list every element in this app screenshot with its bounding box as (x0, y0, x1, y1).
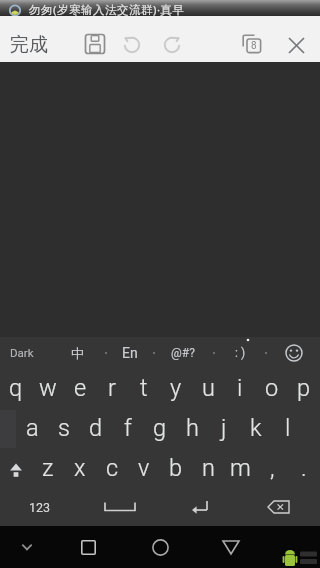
staticText: w (39, 374, 57, 402)
staticText: d (89, 414, 103, 442)
button[interactable] (161, 33, 183, 55)
staticText: @#? (171, 346, 195, 360)
staticText: c (106, 454, 119, 482)
staticText: i (237, 374, 243, 402)
button[interactable]: v (128, 448, 160, 488)
button[interactable]: c (96, 448, 128, 488)
button[interactable] (211, 528, 251, 566)
button[interactable] (170, 488, 230, 526)
staticText: r (108, 374, 116, 402)
staticText: . (301, 454, 307, 482)
button[interactable]: 8 (240, 32, 264, 56)
button[interactable]: e (64, 368, 96, 408)
button[interactable] (140, 528, 180, 566)
button[interactable]: @#? (161, 337, 205, 368)
staticText: g (153, 414, 167, 442)
button[interactable]: 123 (10, 488, 70, 526)
button[interactable] (80, 488, 160, 526)
staticText: f (124, 414, 132, 442)
button[interactable]: d (80, 408, 112, 448)
staticText: q (9, 374, 23, 402)
button[interactable] (68, 528, 108, 566)
staticText: p (297, 374, 311, 402)
staticText: n (202, 454, 215, 482)
button[interactable]: l (272, 408, 304, 448)
staticText: e (74, 374, 87, 402)
staticText: x (74, 454, 86, 482)
button[interactable]: g (144, 408, 176, 448)
button[interactable]: w (32, 368, 64, 408)
button[interactable]: z (32, 448, 64, 488)
staticText: m (230, 454, 251, 482)
staticText: s (58, 414, 70, 442)
staticText: j (221, 414, 227, 442)
staticText: t (140, 374, 148, 402)
button[interactable]: y (160, 368, 192, 408)
button[interactable]: s (48, 408, 80, 448)
button[interactable]: . (288, 448, 320, 488)
button[interactable]: , (256, 448, 288, 488)
button[interactable]: t (128, 368, 160, 408)
button[interactable] (285, 35, 308, 58)
button[interactable]: b (160, 448, 192, 488)
button[interactable] (121, 33, 143, 55)
staticText: h (186, 414, 199, 442)
button[interactable]: a (16, 408, 48, 448)
button[interactable] (84, 33, 106, 55)
button[interactable]: k (240, 408, 272, 448)
staticText: 勿匆(岁寒输入法交流群)·真早 (29, 2, 185, 18)
button[interactable]: j (208, 408, 240, 448)
button[interactable]: r (96, 368, 128, 408)
button[interactable]: o (256, 368, 288, 408)
staticText: 中 (71, 345, 84, 361)
button[interactable]: En (108, 337, 152, 368)
staticText: y (170, 374, 182, 402)
button[interactable]: f (112, 408, 144, 448)
button[interactable]: u (192, 368, 224, 408)
button[interactable] (250, 488, 306, 526)
button[interactable]: p (288, 368, 320, 408)
staticText: , (270, 454, 275, 482)
staticText: b (169, 454, 183, 482)
staticText: o (265, 374, 279, 402)
button[interactable]: m (224, 448, 256, 488)
button[interactable]: 中 (55, 337, 99, 368)
button[interactable]: 完成 (0, 30, 58, 60)
button[interactable]: q (0, 368, 32, 408)
button[interactable]: x (64, 448, 96, 488)
button[interactable]: h (176, 408, 208, 448)
button[interactable]: Dark (0, 337, 44, 368)
staticText: a (26, 414, 39, 442)
staticText: v (138, 454, 150, 482)
staticText: 123 (29, 500, 51, 515)
staticText: : ) (235, 346, 246, 360)
button[interactable] (10, 530, 44, 564)
button[interactable] (0, 448, 32, 488)
button[interactable] (283, 342, 305, 364)
staticText: 完成 (10, 33, 48, 57)
button[interactable]: i (224, 368, 256, 408)
button[interactable]: : ) (218, 337, 262, 368)
staticText: u (202, 374, 215, 402)
staticText: En (122, 345, 138, 361)
staticText: 8 (251, 40, 257, 52)
staticText: l (285, 414, 291, 442)
staticText: z (42, 454, 54, 482)
staticText: k (250, 414, 262, 442)
button[interactable]: n (192, 448, 224, 488)
staticText: Dark (10, 346, 34, 359)
